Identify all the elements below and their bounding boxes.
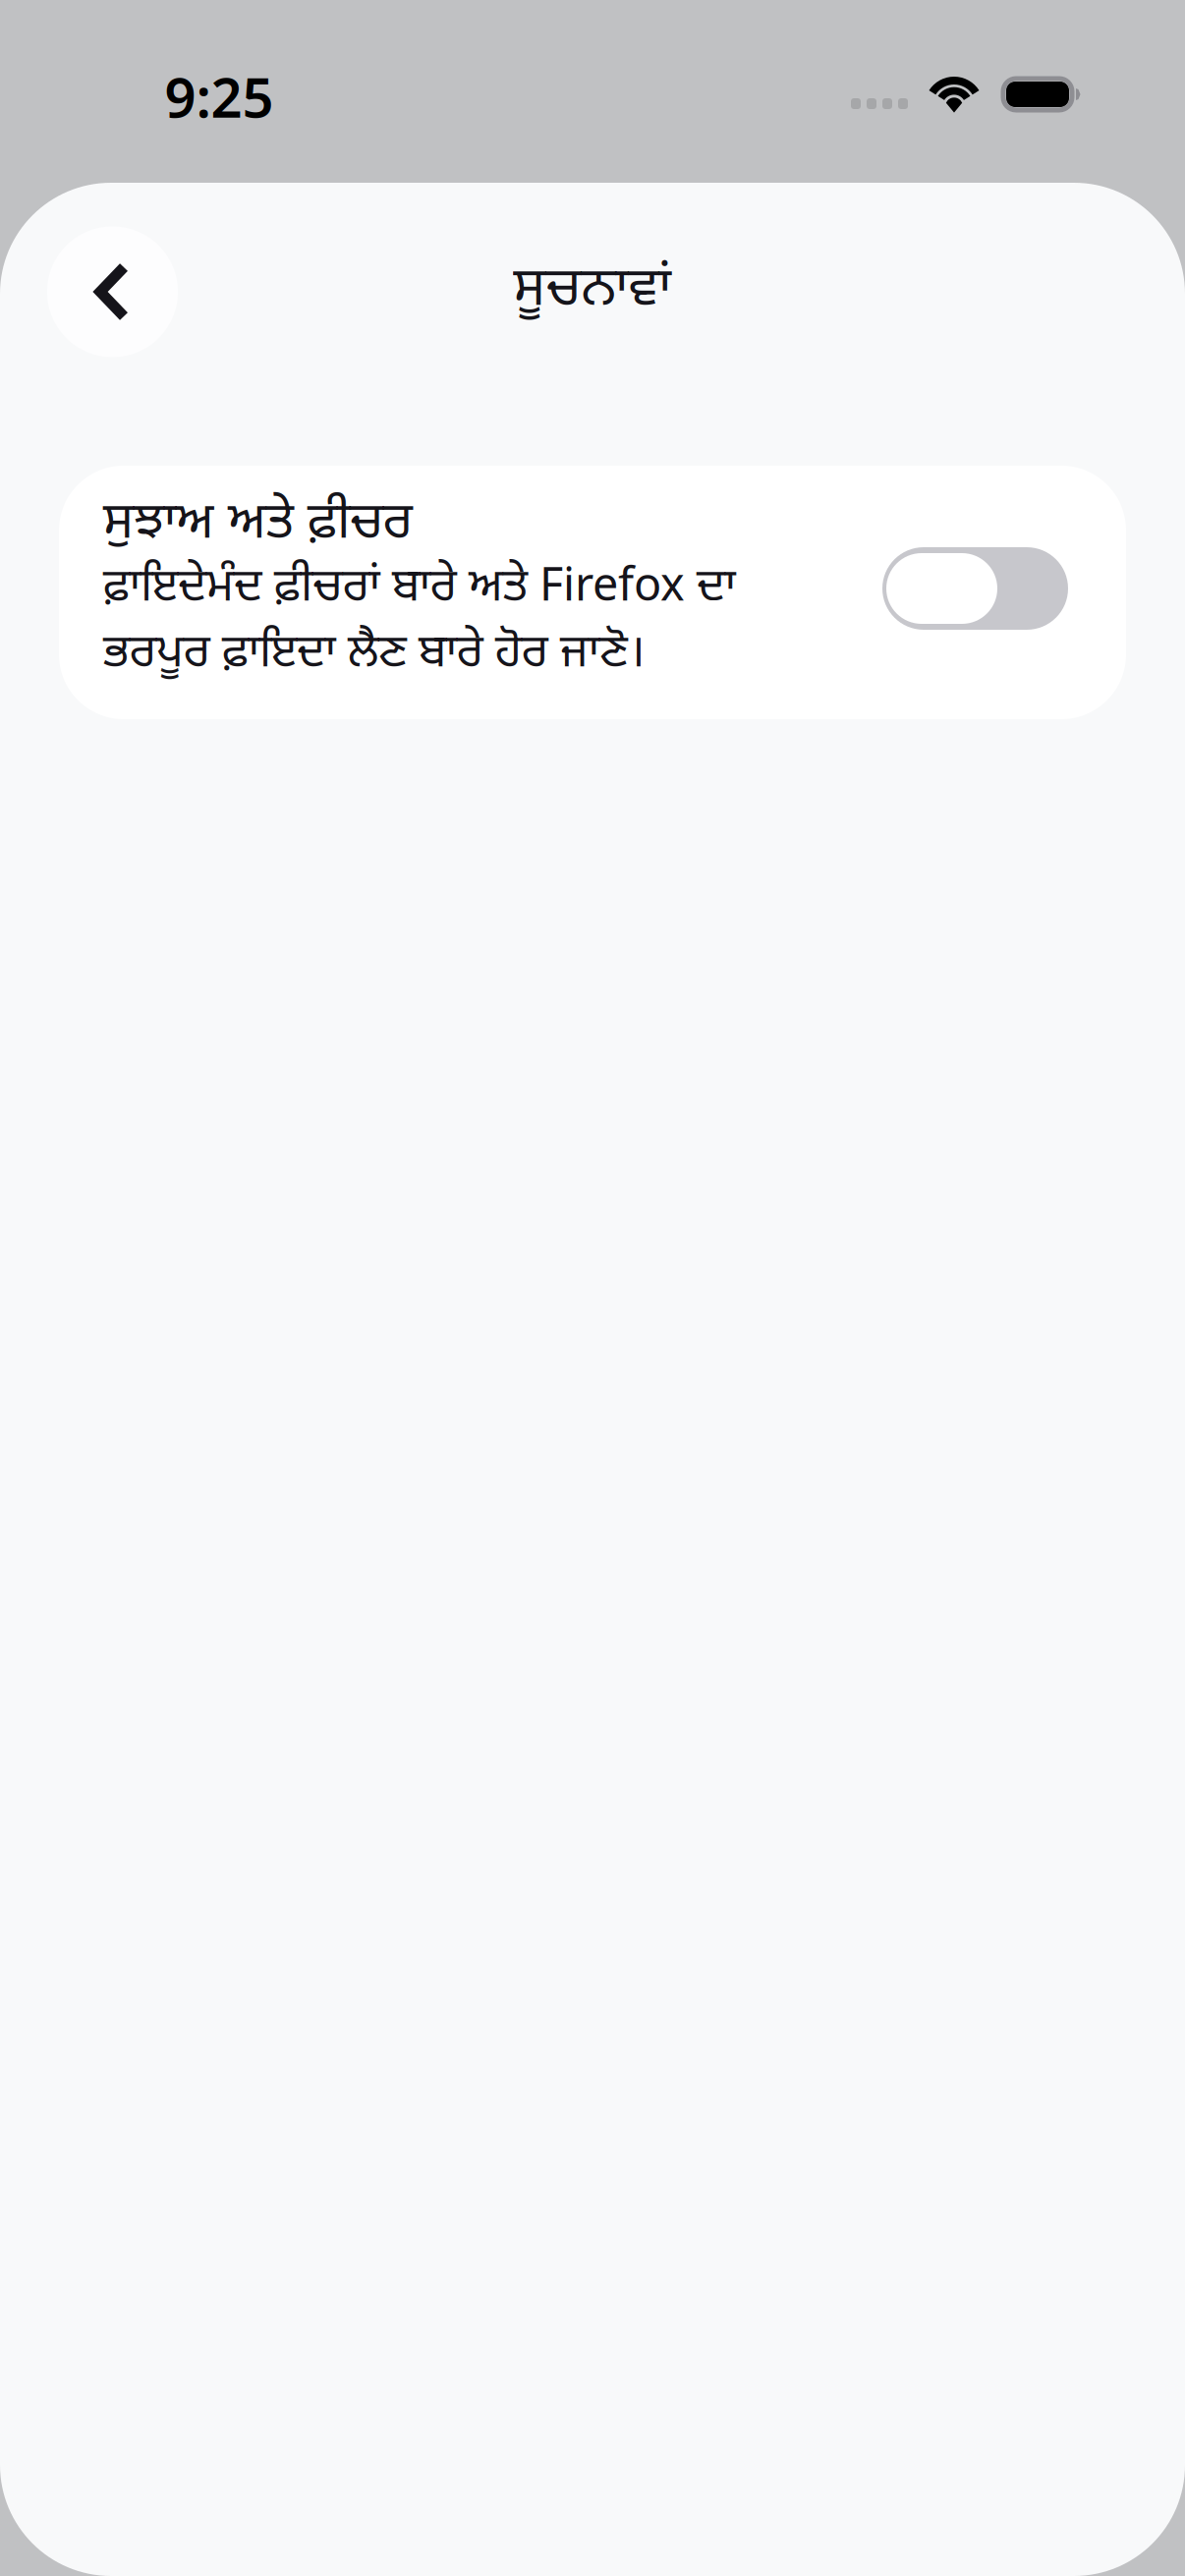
staticText: 9:25	[165, 60, 274, 133]
button[interactable]: Back	[47, 226, 178, 357]
staticText: ਸੁਝਾਅ ਅਤੇ ਫ਼ੀਚਰ	[103, 492, 413, 559]
button[interactable]: ਸੁਝਾਅ ਅਤੇ ਫ਼ੀਚਰ	[59, 466, 1126, 719]
staticText: ਸੂਚਨਾਵਾਂ	[513, 257, 672, 327]
staticText: ਫ਼ਾਇਦੇਮੰਦ ਫ਼ੀਚਰਾਂ ਬਾਰੇ ਅਤੇ Firefox ਦਾ ਭਰ…	[103, 560, 736, 685]
